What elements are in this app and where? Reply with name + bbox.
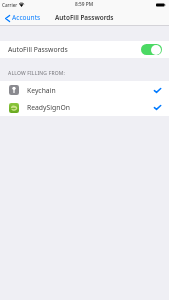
button[interactable]: ReadySignOn xyxy=(0,99,169,116)
staticText: Carrier xyxy=(2,2,18,8)
staticText: AutoFill Passwords xyxy=(8,45,68,54)
button[interactable]: AutoFill Passwords toggle, on xyxy=(141,44,162,55)
staticText: ReadySignOn xyxy=(27,103,70,112)
staticText: ALLOW FILLING FROM: xyxy=(8,70,66,77)
other: Enabled xyxy=(154,88,161,93)
button[interactable]: AutoFill Passwords xyxy=(0,41,169,58)
button[interactable]: Accounts xyxy=(0,10,45,26)
other: Enabled xyxy=(154,105,161,110)
staticText: Accounts xyxy=(12,13,41,22)
staticText: Keychain xyxy=(27,86,56,95)
button[interactable]: Keychain xyxy=(0,81,169,99)
staticText: 8:59 PM xyxy=(75,1,94,8)
staticText: AutoFill Passwords xyxy=(55,13,114,22)
